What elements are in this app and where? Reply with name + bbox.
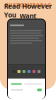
staticText: CUSTOMIZABLE: [5, 2, 51, 9]
staticText: Want: [19, 12, 36, 20]
staticText: Read However You: [4, 2, 52, 19]
